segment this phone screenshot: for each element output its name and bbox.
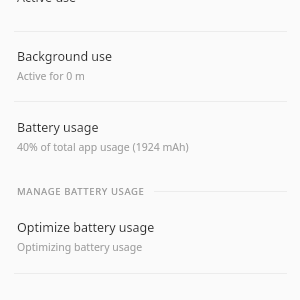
button[interactable]: Optimize battery usage	[0, 202, 300, 266]
button[interactable]: Active use	[0, 0, 300, 24]
staticText: Battery usage	[17, 119, 99, 136]
button[interactable]: Background use	[0, 38, 300, 94]
staticText: 40% of total app usage (1924 mAh)	[17, 140, 189, 154]
staticText: Active use	[17, 0, 77, 6]
staticText: Optimize battery usage	[17, 219, 155, 236]
staticText: Active for 0 m	[17, 69, 85, 83]
button[interactable]: Battery usage	[0, 108, 300, 165]
staticText: Background use	[17, 48, 113, 65]
staticText: MANAGE BATTERY USAGE	[17, 185, 145, 198]
staticText: Optimizing battery usage	[17, 240, 143, 254]
